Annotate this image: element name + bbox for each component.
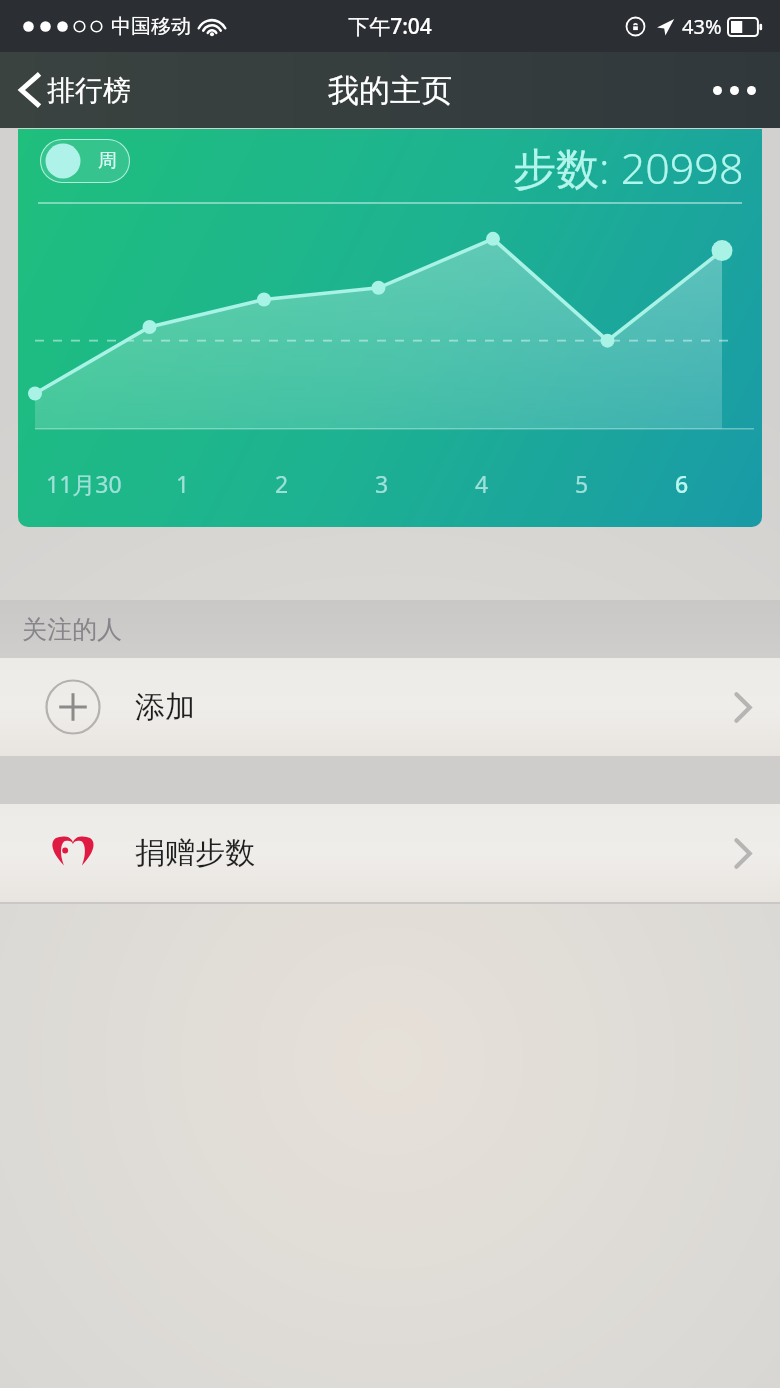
button[interactable]: 捐赠步数 <box>0 804 780 902</box>
staticText: 4 <box>475 468 489 499</box>
button[interactable]: More options <box>689 64 780 117</box>
staticText: 3 <box>375 468 389 499</box>
staticText: 43% <box>682 13 722 40</box>
staticText: 添加 <box>135 688 195 726</box>
staticText: 11月30 <box>46 468 122 499</box>
staticText: 1 <box>176 468 190 499</box>
button[interactable]: 排行榜 <box>0 64 149 116</box>
button[interactable]: 周 <box>18 129 762 527</box>
staticText: 周 <box>98 149 117 173</box>
staticText: 排行榜 <box>47 73 131 108</box>
staticText: 关注的人 <box>22 614 122 645</box>
staticText: 2 <box>275 468 289 499</box>
staticText: 捐赠步数 <box>135 834 255 872</box>
staticText: 6 <box>675 468 689 499</box>
staticText: 步数: 20998 <box>513 138 744 197</box>
staticText: 中国移动 <box>111 14 191 39</box>
staticText: 下午7:04 <box>348 12 432 41</box>
button[interactable]: 周 <box>40 139 130 183</box>
staticText: 5 <box>575 468 589 499</box>
button[interactable]: 添加 <box>0 658 780 756</box>
staticText: 我的主页 <box>328 71 452 110</box>
